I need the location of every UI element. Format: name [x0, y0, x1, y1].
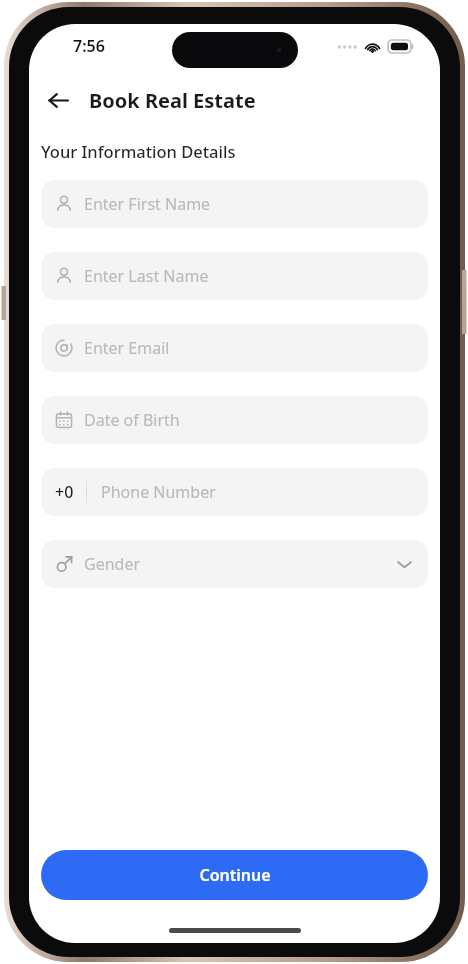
- button[interactable]: +0: [41, 468, 428, 516]
- staticText: Book Real Estate: [89, 87, 256, 114]
- staticText: Enter Last Name: [84, 265, 209, 287]
- button[interactable]: Gender: [41, 540, 428, 588]
- button[interactable]: Date of Birth: [41, 396, 428, 444]
- staticText: Phone Number: [101, 481, 216, 503]
- button[interactable]: Continue: [41, 850, 428, 900]
- staticText: Continue: [199, 864, 271, 886]
- button[interactable]: Enter Email: [41, 324, 428, 372]
- staticText: +0: [55, 481, 74, 503]
- button[interactable]: Enter Last Name: [41, 252, 428, 300]
- staticText: Your Information Details: [41, 140, 236, 162]
- staticText: Enter Email: [84, 337, 170, 359]
- staticText: Enter First Name: [84, 193, 211, 215]
- staticText: Date of Birth: [84, 409, 180, 431]
- button[interactable]: Back: [41, 83, 75, 117]
- button[interactable]: Enter First Name: [41, 180, 428, 228]
- staticText: Gender: [84, 553, 141, 575]
- staticText: 7:56: [73, 35, 105, 57]
